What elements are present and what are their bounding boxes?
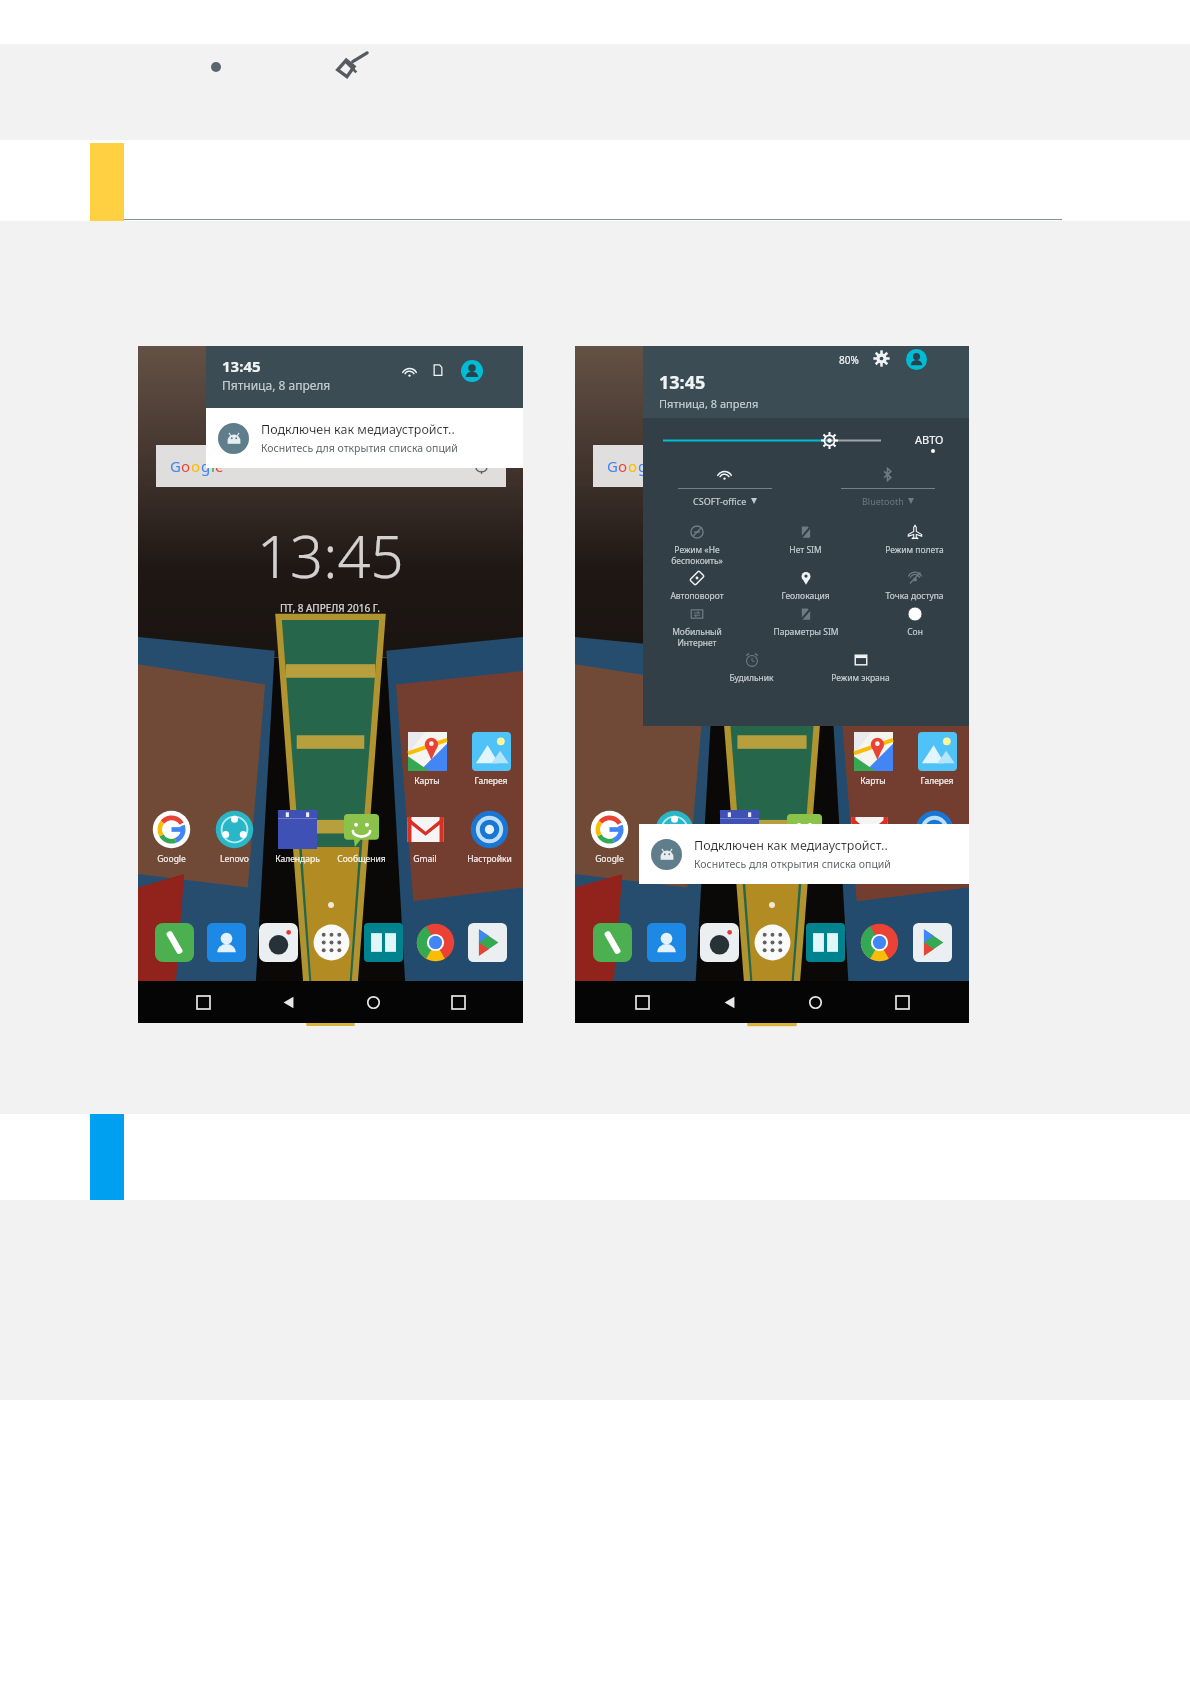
staticText: Google	[157, 853, 186, 865]
staticText: l	[211, 456, 215, 476]
button[interactable]: Галерея	[905, 732, 969, 787]
staticText: 13:45	[222, 356, 261, 376]
button[interactable]: Автоповорот	[643, 570, 751, 606]
button[interactable]: Recents	[438, 982, 478, 1022]
button[interactable]: Menu	[183, 982, 223, 1022]
staticText: Параметры SIM	[773, 626, 839, 638]
staticText: o	[628, 456, 638, 476]
staticText: Галерея	[920, 775, 954, 787]
button[interactable]: Recents	[882, 982, 922, 1022]
button[interactable]: Календарь	[266, 810, 329, 865]
button[interactable]: Будильник	[697, 652, 806, 702]
button[interactable]: Chrome	[857, 920, 901, 964]
button[interactable]: Play Store	[465, 920, 509, 964]
staticText: Режим «Не беспокоить»	[671, 544, 723, 566]
button[interactable]: Подключен как медиаустройст..	[206, 408, 523, 468]
button[interactable]: Настройки	[902, 810, 967, 865]
staticText: Lenovo	[660, 853, 689, 865]
staticText: CSOFT-office	[693, 495, 747, 507]
button[interactable]: User	[906, 349, 927, 370]
button[interactable]: Сообщения	[329, 810, 393, 865]
staticText: Сообщения	[780, 853, 829, 865]
button[interactable]: Сообщения	[772, 810, 837, 865]
staticText: 13:45	[659, 370, 706, 395]
button[interactable]: Геолокация	[751, 570, 860, 606]
button[interactable]: G	[593, 445, 943, 487]
staticText: G	[170, 456, 181, 476]
staticText: o	[618, 456, 628, 476]
staticText: Галерея	[474, 775, 508, 787]
staticText: Карты	[414, 775, 440, 787]
staticText: Календарь	[717, 853, 762, 865]
button[interactable]: Play Store	[910, 920, 954, 964]
staticText: Коснитесь для открытия списка опций	[694, 857, 891, 871]
staticText: Нет SIM	[789, 544, 822, 556]
staticText: Настройки	[467, 853, 512, 865]
button[interactable]: Gmail	[393, 810, 457, 865]
staticText: o	[191, 456, 201, 476]
staticText: G	[607, 456, 618, 476]
button[interactable]: Google	[140, 810, 203, 865]
button[interactable]: Books	[361, 920, 405, 964]
button[interactable]: Режим «Не беспокоить»	[643, 524, 751, 570]
staticText: 80%	[839, 353, 859, 367]
button[interactable]: Настройки	[457, 810, 521, 865]
staticText: g	[638, 456, 648, 476]
button[interactable]: Галерея	[459, 732, 523, 787]
button[interactable]: Chrome	[413, 920, 457, 964]
button[interactable]: Menu	[622, 982, 662, 1022]
button[interactable]: Contacts	[644, 920, 688, 964]
staticText: Подключен как медиаустройст..	[694, 837, 888, 854]
button[interactable]: Режим экрана	[806, 652, 915, 702]
button[interactable]: Back	[709, 982, 749, 1022]
staticText: Точка доступа	[885, 590, 944, 602]
button[interactable]: Settings	[873, 350, 890, 367]
button[interactable]: G	[156, 445, 506, 487]
button[interactable]: Lenovo	[642, 810, 707, 865]
button[interactable]: User	[461, 360, 483, 382]
button[interactable]: Карты	[395, 732, 459, 787]
staticText: Режим экрана	[831, 672, 890, 684]
button[interactable]: All apps	[750, 920, 794, 964]
button[interactable]: Нет SIM	[751, 524, 860, 570]
button[interactable]: Gmail	[837, 810, 902, 865]
button[interactable]: Календарь	[707, 810, 772, 865]
staticText: АВТО	[915, 432, 944, 447]
staticText: Карты	[860, 775, 886, 787]
button[interactable]: Bluetooth	[806, 462, 969, 518]
staticText: g	[201, 456, 211, 476]
staticText: Автоповорот	[670, 590, 724, 602]
button[interactable]: Google	[577, 810, 642, 865]
button[interactable]: Phone	[152, 920, 196, 964]
staticText: 13:45	[257, 516, 404, 595]
staticText: Сообщения	[337, 853, 386, 865]
button[interactable]: Home	[353, 982, 393, 1022]
button[interactable]: All apps	[309, 920, 353, 964]
button[interactable]: Подключен как медиаустройст..	[639, 824, 969, 884]
button[interactable]: Сон	[860, 606, 969, 652]
button[interactable]: Contacts	[204, 920, 248, 964]
staticText: Будильник	[729, 672, 774, 684]
button[interactable]: Режим полета	[860, 524, 969, 570]
button[interactable]: Home	[795, 982, 835, 1022]
button[interactable]: Books	[803, 920, 847, 964]
button[interactable]: CSOFT-office	[643, 462, 806, 518]
button[interactable]: Точка доступа	[860, 570, 969, 606]
button[interactable]: Camera	[697, 920, 741, 964]
button[interactable]: Карты	[841, 732, 905, 787]
button[interactable]: Мобильный Интернет	[643, 606, 751, 652]
staticText: Сон	[907, 626, 923, 638]
button[interactable]: Back	[268, 982, 308, 1022]
staticText: Календарь	[275, 853, 320, 865]
button[interactable]: Lenovo	[203, 810, 266, 865]
staticText: Gmail	[413, 853, 437, 865]
staticText: ПТ, 8 АПРЕЛЯ 2016 Г.	[280, 601, 381, 615]
other: Voice search	[473, 458, 490, 475]
button[interactable]: Camera	[256, 920, 300, 964]
button[interactable]: Параметры SIM	[751, 606, 860, 652]
button[interactable]: Phone	[590, 920, 634, 964]
staticText: e	[215, 456, 224, 476]
